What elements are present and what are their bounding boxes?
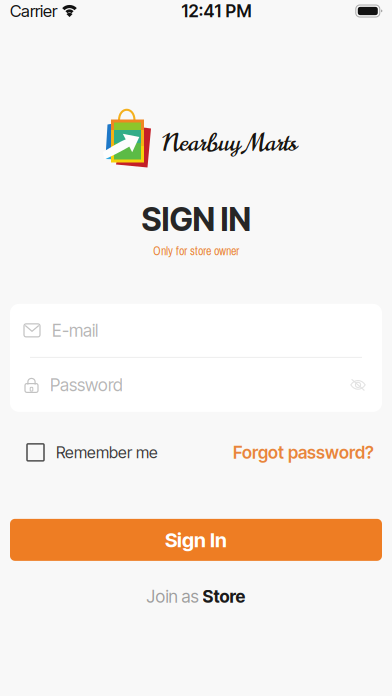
- staticText: Remember me: [56, 443, 158, 462]
- button[interactable]: Show password: [346, 375, 370, 395]
- button[interactable]: E-mail: [10, 304, 382, 357]
- staticText: Store: [202, 586, 245, 607]
- button[interactable]: Remember me: [27, 439, 158, 466]
- staticText: 12:41 PM: [181, 0, 251, 21]
- staticText: Sign In: [165, 528, 227, 552]
- button[interactable]: Join as: [140, 583, 251, 610]
- button[interactable]: Sign In: [10, 519, 382, 561]
- staticText: Join as: [146, 586, 198, 607]
- button[interactable]: Forgot password?: [233, 438, 374, 467]
- staticText: Nearbuy Marts: [162, 126, 297, 160]
- staticText: Only for store owner: [153, 243, 239, 259]
- staticText: Forgot password?: [233, 442, 374, 463]
- staticText: Password: [50, 374, 123, 395]
- staticText: Carrier: [10, 1, 57, 21]
- staticText: SIGN IN: [141, 200, 250, 239]
- staticText: E-mail: [52, 320, 98, 341]
